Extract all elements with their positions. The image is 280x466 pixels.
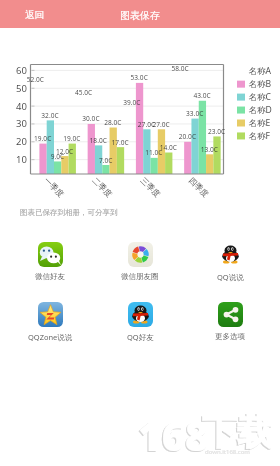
button[interactable]: QQZone说说 [5, 299, 95, 342]
staticText: 微信朋友圈 [121, 272, 159, 281]
button[interactable]: QQ说说 [185, 239, 275, 282]
button[interactable]: 返回 [0, 0, 59, 28]
staticText: 返回 [25, 9, 44, 21]
button[interactable]: QQ好友 [95, 299, 185, 342]
button[interactable]: 更多选项 [185, 299, 275, 341]
staticText: 更多选项 [215, 332, 245, 341]
staticText: 图表已保存到相册，可分享到 [20, 208, 118, 217]
staticText: QQ好友 [127, 332, 154, 342]
button[interactable]: 微信朋友圈 [95, 239, 185, 281]
staticText: 微信好友 [35, 272, 65, 281]
staticText: QQ说说 [217, 272, 244, 282]
button[interactable]: 微信好友 [5, 239, 95, 281]
staticText: 图表保存 [120, 9, 160, 22]
staticText: QQZone说说 [28, 332, 73, 342]
